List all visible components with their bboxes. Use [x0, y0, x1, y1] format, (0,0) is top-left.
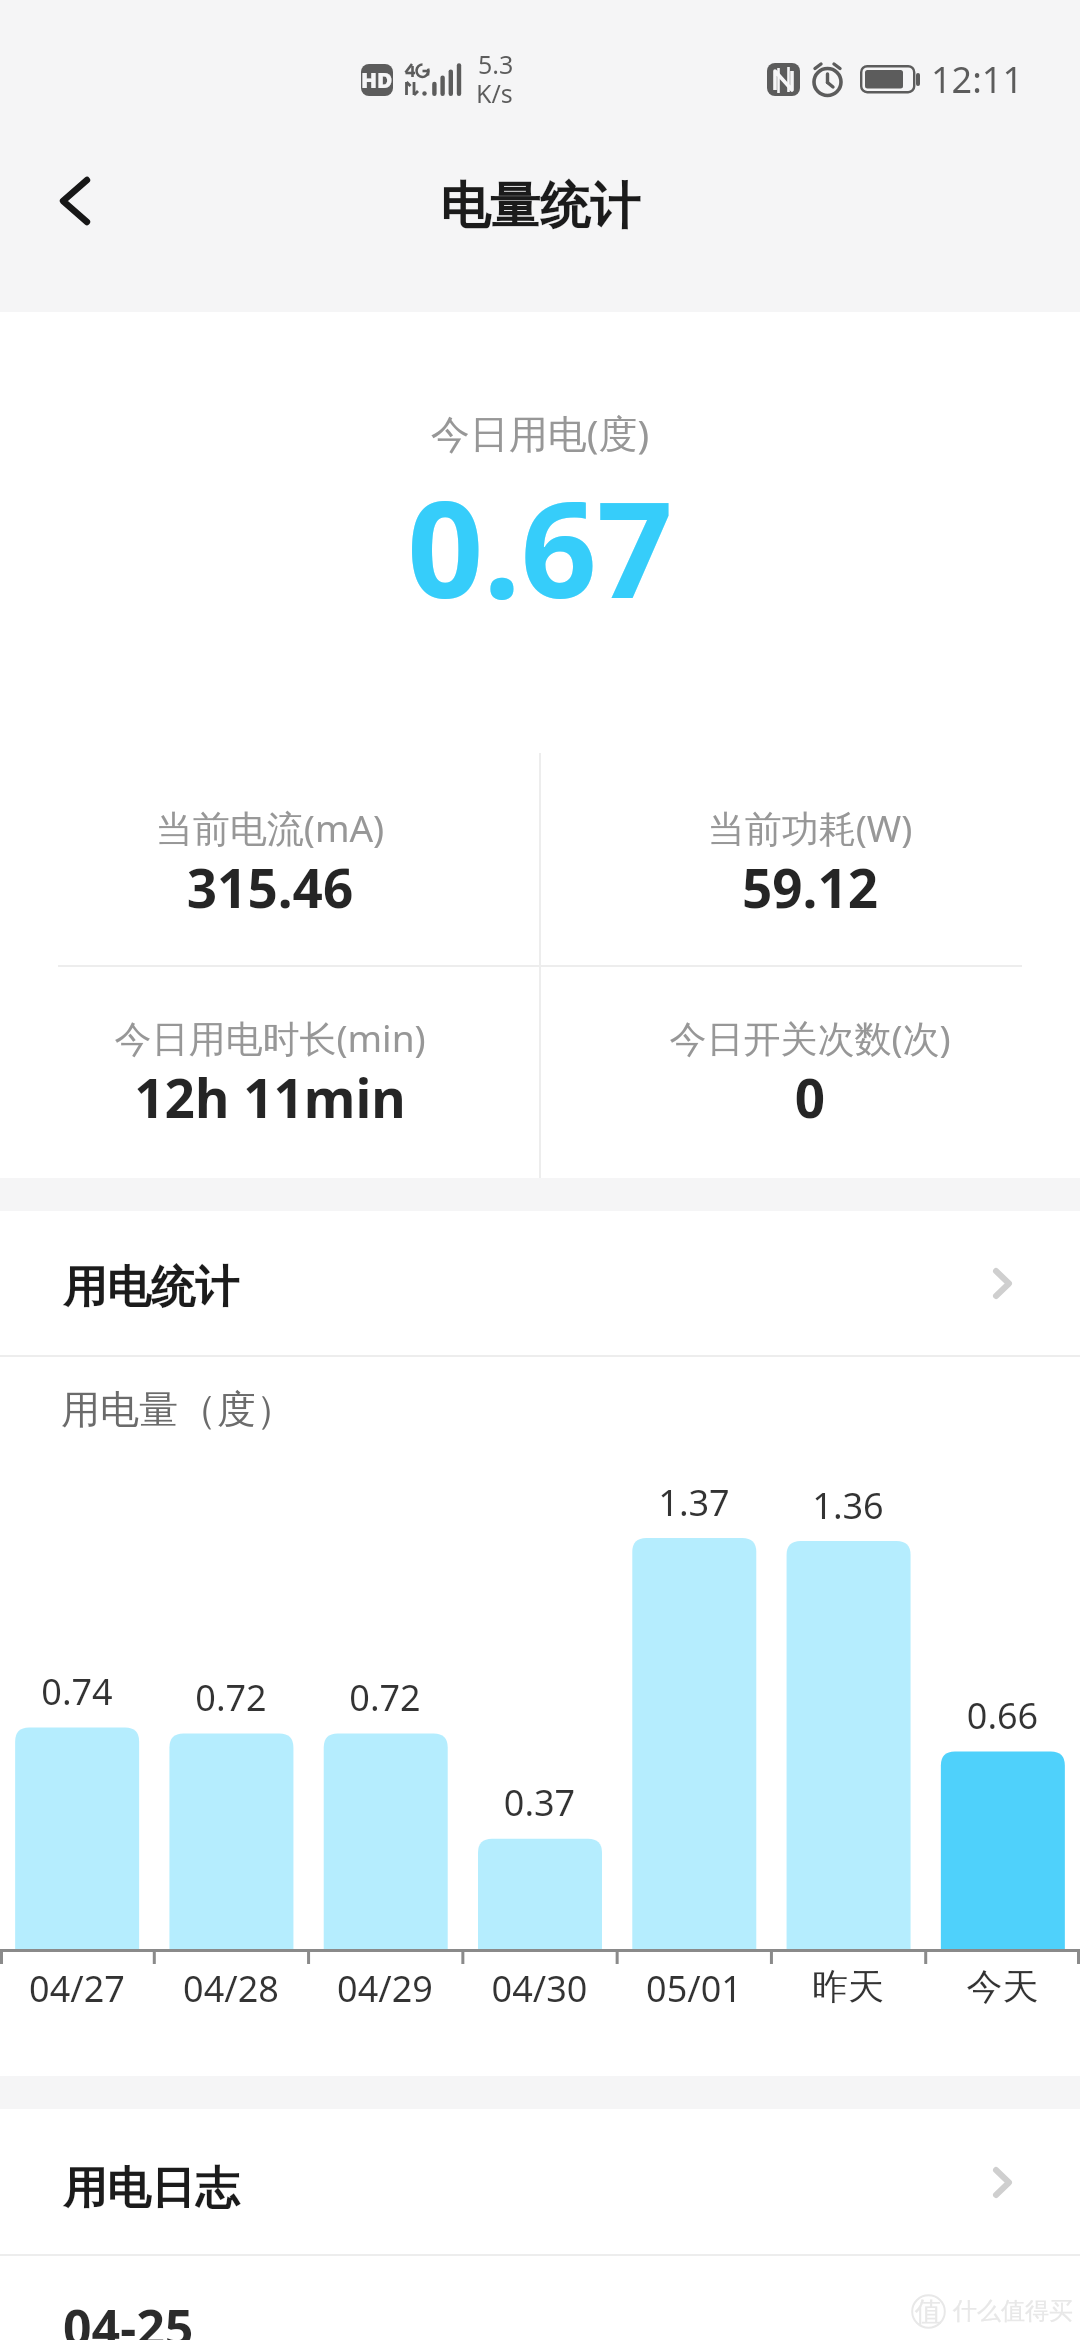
staticText: 今日用电(度) — [0, 406, 1080, 459]
staticText: 0.37 — [462, 1778, 617, 1827]
staticText: 用电量（度） — [61, 1385, 295, 1434]
staticText: 5.3 — [478, 47, 514, 81]
staticText: K/s — [476, 76, 513, 110]
staticText: 0.72 — [154, 1673, 308, 1722]
staticText: 1.37 — [617, 1478, 771, 1527]
staticText: 0 — [540, 1061, 1080, 1133]
staticText: 今日开关次数(次) — [540, 1012, 1080, 1063]
staticText: 当前功耗(W) — [540, 802, 1080, 853]
staticText: 59.12 — [540, 851, 1080, 923]
staticText: 昨天 — [771, 1964, 925, 2009]
staticText: 今日用电时长(min) — [0, 1012, 540, 1063]
staticText: 05/01 — [617, 1964, 771, 2013]
button[interactable]: 用电日志 — [0, 2109, 1080, 2255]
staticText: 04-25 — [63, 2293, 194, 2340]
staticText: 用电日志 — [63, 2161, 239, 2216]
staticText: 12h 11min — [0, 1061, 540, 1133]
button[interactable]: 用电统计 — [0, 1211, 1080, 1356]
staticText: 1.36 — [771, 1481, 925, 1530]
staticText: 今天 — [925, 1964, 1080, 2009]
staticText: HD — [361, 66, 393, 95]
staticText: 当前电流(mA) — [0, 802, 540, 853]
staticText: 04/30 — [462, 1964, 617, 2013]
staticText: 04/29 — [308, 1964, 462, 2013]
staticText: 0.67 — [0, 456, 1080, 637]
staticText: 04/27 — [0, 1964, 154, 2013]
staticText: 0.72 — [308, 1673, 462, 1722]
staticText: 用电统计 — [63, 1260, 239, 1315]
staticText: 0.74 — [0, 1667, 154, 1716]
staticText: 12:11 — [931, 55, 1024, 104]
staticText: 04/28 — [154, 1964, 308, 2013]
staticText: 315.46 — [0, 851, 540, 923]
staticText: 0.66 — [925, 1691, 1080, 1740]
button[interactable]: Back — [24, 153, 120, 249]
staticText: 电量统计 — [0, 175, 1080, 238]
staticText: 值 — [915, 2295, 942, 2329]
staticText: 什么值得买 — [953, 2296, 1073, 2326]
